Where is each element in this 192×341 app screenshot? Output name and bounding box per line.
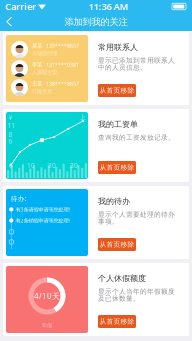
staticText: 事项。 bbox=[98, 217, 119, 225]
staticText: 市场部经理 bbox=[32, 50, 57, 57]
staticText: 我的待办 bbox=[98, 196, 130, 206]
staticText: 4/10天 bbox=[34, 291, 60, 301]
button[interactable]: 从首页移除 bbox=[98, 238, 136, 251]
staticText: 年假 bbox=[42, 322, 52, 329]
staticText: 30 bbox=[70, 161, 78, 170]
staticText: 莫某 bbox=[32, 42, 42, 49]
staticText: 人事部主管 bbox=[32, 69, 57, 76]
button[interactable]: 从首页移除 bbox=[98, 315, 136, 328]
staticText: 上 bbox=[79, 113, 86, 122]
staticText: 从首页移除 bbox=[99, 240, 134, 249]
staticText: 添加到我的关注 bbox=[64, 16, 127, 28]
staticText: 从首页移除 bbox=[99, 163, 134, 172]
staticText: 135****8657 bbox=[46, 42, 79, 49]
staticText: 王某 bbox=[32, 80, 42, 87]
staticText: 个人休假额度 bbox=[98, 273, 146, 283]
staticText: 20 bbox=[48, 161, 56, 170]
staticText: 待办: bbox=[11, 194, 27, 203]
staticText: 常用联系人 bbox=[98, 42, 138, 52]
staticText: 11:36 AM bbox=[88, 0, 128, 13]
staticText: 从首页移除 bbox=[99, 317, 134, 326]
staticText: 10 bbox=[27, 161, 35, 170]
staticText: 及已休数量。 bbox=[98, 294, 140, 302]
staticText: 李某 bbox=[32, 61, 42, 68]
staticText: 查询我的工资发放记录。 bbox=[98, 133, 175, 141]
staticText: 从首页移除 bbox=[99, 86, 134, 95]
staticText: 8 bbox=[8, 130, 12, 139]
button[interactable]: Back bbox=[0, 13, 19, 30]
staticText: 11 bbox=[7, 121, 15, 130]
staticText: 行政专员 bbox=[32, 88, 52, 95]
staticText: ¥ bbox=[8, 113, 12, 122]
staticText: 显示个人当年的年假额度 bbox=[98, 287, 175, 295]
staticText: 有2条销假申请等您处理! bbox=[15, 217, 69, 224]
button[interactable]: 从首页移除 bbox=[98, 84, 136, 97]
staticText: 显示已添加到常用联系人 bbox=[98, 56, 175, 64]
staticText: Carrier bbox=[5, 0, 36, 13]
staticText: 0 bbox=[9, 161, 13, 170]
staticText: 有3条请假申请等您处理! bbox=[15, 206, 69, 213]
staticText: 我的工资单 bbox=[98, 119, 138, 129]
staticText: 中的人员信息。 bbox=[98, 63, 147, 71]
staticText: 131****0381 bbox=[46, 61, 79, 68]
staticText: 6 bbox=[8, 137, 12, 145]
staticText: 显示个人需要处理的待办 bbox=[98, 210, 175, 218]
button[interactable]: 从首页移除 bbox=[98, 161, 136, 174]
staticText: 138****8657 bbox=[46, 80, 79, 87]
